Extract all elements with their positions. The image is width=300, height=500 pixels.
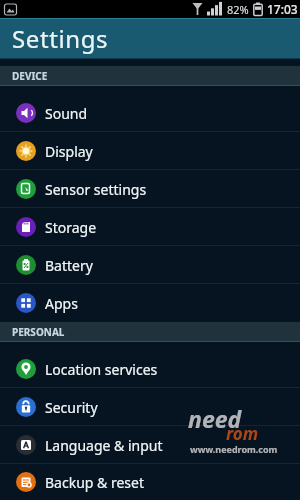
staticText: 17:03 — [267, 1, 298, 17]
button[interactable]: Language & input — [0, 426, 300, 464]
staticText: rom — [226, 422, 259, 445]
staticText: PERSONAL — [12, 325, 65, 339]
button[interactable]: Sound — [0, 94, 300, 132]
staticText: DEVICE — [12, 69, 48, 83]
button[interactable]: Storage — [0, 208, 300, 246]
staticText: Settings — [12, 22, 109, 55]
staticText: 82% — [227, 2, 249, 17]
button[interactable]: Location services — [0, 350, 300, 388]
button[interactable]: Security — [0, 388, 300, 426]
staticText: Apps — [45, 294, 78, 313]
staticText: Backup & reset — [45, 473, 144, 492]
staticText: Location services — [45, 360, 158, 379]
staticText: Language & input — [45, 436, 163, 455]
button[interactable]: Battery — [0, 246, 300, 284]
button[interactable]: Apps — [0, 284, 300, 322]
button[interactable]: Sensor settings — [0, 170, 300, 208]
staticText: Storage — [45, 218, 97, 237]
staticText: www.needrom.com — [190, 443, 278, 455]
staticText: Sensor settings — [45, 180, 147, 199]
button[interactable]: Display — [0, 132, 300, 170]
staticText: Sound — [45, 104, 88, 123]
staticText: Battery — [45, 256, 93, 275]
button[interactable]: Backup & reset — [0, 464, 300, 500]
staticText: Display — [45, 142, 93, 161]
staticText: Security — [45, 398, 98, 417]
staticText: need — [188, 403, 242, 434]
